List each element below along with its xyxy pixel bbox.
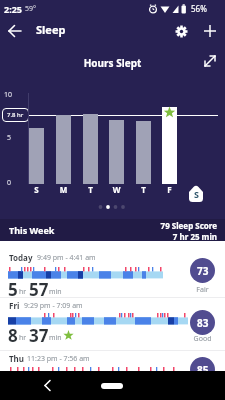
staticText: min xyxy=(49,333,62,343)
staticText: T xyxy=(136,184,151,195)
staticText: min xyxy=(49,287,62,297)
staticText: 9:49 pm - 4:41 am xyxy=(37,253,96,263)
staticText: 0 xyxy=(7,178,12,188)
button[interactable] xyxy=(203,24,217,38)
staticText: Sleep xyxy=(36,22,66,37)
staticText: W xyxy=(109,184,124,195)
button[interactable] xyxy=(0,351,225,400)
staticText: 85 xyxy=(197,363,209,377)
staticText: Fair xyxy=(190,285,215,295)
staticText: 11:23 pm - 7:56 am xyxy=(27,354,90,364)
staticText: 2:25 xyxy=(4,3,22,15)
staticText: 83 xyxy=(197,316,209,330)
staticText: S xyxy=(29,184,44,195)
staticText: 8 xyxy=(8,324,18,347)
staticText: 5 xyxy=(8,278,18,301)
staticText: 37 xyxy=(29,324,49,347)
staticText: Fri xyxy=(9,300,20,311)
button[interactable] xyxy=(0,219,225,241)
button[interactable] xyxy=(174,24,189,39)
staticText: F xyxy=(162,184,177,195)
staticText: hr xyxy=(19,287,27,297)
button[interactable] xyxy=(38,376,58,396)
staticText: 57 xyxy=(29,278,49,301)
staticText: S xyxy=(188,188,205,200)
staticText: 7.8 hr xyxy=(7,111,24,119)
staticText: Hours Slept xyxy=(0,56,225,70)
staticText: 73 xyxy=(197,264,209,278)
button[interactable] xyxy=(6,22,24,40)
button[interactable] xyxy=(101,383,123,389)
staticText: Today xyxy=(9,252,33,263)
button[interactable] xyxy=(201,52,219,70)
staticText: This Week xyxy=(9,224,55,236)
staticText: M xyxy=(56,184,71,195)
staticText: 79 Sleep Score xyxy=(0,220,217,231)
staticText: 59° xyxy=(25,4,37,14)
staticText: 9:29 pm - 7:09 am xyxy=(24,301,83,311)
staticText: T xyxy=(83,184,98,195)
staticText: hr xyxy=(19,333,27,343)
staticText: 10 xyxy=(4,90,13,100)
staticText: Thu xyxy=(9,353,25,364)
button[interactable] xyxy=(0,298,225,350)
staticText: Good xyxy=(190,334,215,344)
staticText: 56% xyxy=(191,3,207,14)
staticText: 5 xyxy=(7,133,12,143)
staticText: 7 hr 25 min xyxy=(0,231,217,242)
button[interactable] xyxy=(0,241,225,297)
